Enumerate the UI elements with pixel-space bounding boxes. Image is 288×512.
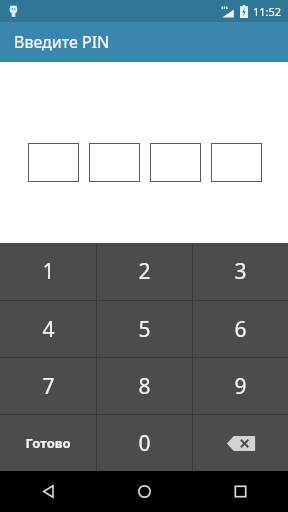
button[interactable]: Back <box>0 471 96 512</box>
staticText: 7 <box>42 372 55 401</box>
button[interactable]: Backspace <box>193 415 288 471</box>
button[interactable] <box>150 143 201 182</box>
staticText: 8 <box>138 372 151 401</box>
button[interactable] <box>211 143 262 182</box>
button[interactable]: 3 <box>193 243 288 300</box>
button[interactable]: 7 <box>0 358 96 414</box>
button[interactable]: 6 <box>193 301 288 357</box>
staticText: 1 <box>42 257 55 286</box>
staticText: 0 <box>138 429 151 458</box>
button[interactable]: 9 <box>193 358 288 414</box>
button[interactable]: Home <box>96 471 192 512</box>
staticText: 3 <box>234 257 247 286</box>
staticText: Готово <box>25 434 71 452</box>
staticText: 5 <box>138 315 151 344</box>
button[interactable]: Готово <box>0 415 96 471</box>
staticText: 9 <box>234 372 247 401</box>
button[interactable]: 8 <box>97 358 192 414</box>
button[interactable]: 2 <box>97 243 192 300</box>
button[interactable] <box>28 143 79 182</box>
button[interactable]: 4 <box>0 301 96 357</box>
button[interactable]: 1 <box>0 243 96 300</box>
staticText: Введите PIN <box>14 31 110 53</box>
button[interactable]: 5 <box>97 301 192 357</box>
button[interactable]: 0 <box>97 415 192 471</box>
staticText: 6 <box>234 315 247 344</box>
staticText: 2 <box>138 257 151 286</box>
button[interactable] <box>89 143 140 182</box>
button[interactable]: Recent apps <box>192 471 288 512</box>
staticText: 4 <box>42 315 55 344</box>
staticText: 11:52 <box>253 4 282 19</box>
